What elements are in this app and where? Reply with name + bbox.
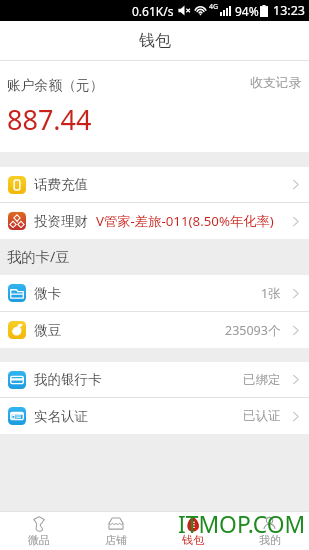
staticText: 投资理财 bbox=[34, 213, 88, 230]
staticText: 已认证 bbox=[243, 408, 281, 424]
staticText: 我的 bbox=[259, 533, 281, 547]
staticText: V管家-差旅-011(8.50%年化率) bbox=[96, 212, 274, 230]
staticText: 13:23 bbox=[273, 2, 305, 19]
staticText: 94% bbox=[235, 3, 259, 19]
staticText: 店铺 bbox=[105, 533, 127, 547]
staticText: 账户余额（元） bbox=[7, 77, 104, 94]
button[interactable]: 微品 bbox=[0, 512, 77, 550]
button[interactable]: 投资理财 bbox=[0, 203, 309, 239]
staticText: 微卡 bbox=[34, 285, 61, 302]
button[interactable]: 收支记录 bbox=[248, 72, 304, 94]
staticText: 微豆 bbox=[34, 322, 61, 339]
staticText: 4G bbox=[209, 2, 219, 12]
staticText: 我的银行卡 bbox=[34, 371, 102, 388]
staticText: 887.44 bbox=[7, 101, 92, 138]
staticText: 我的卡/豆 bbox=[7, 247, 70, 267]
button[interactable]: 话费充值 bbox=[0, 167, 309, 202]
button[interactable]: 我的 bbox=[231, 512, 308, 550]
button[interactable]: 微豆 bbox=[0, 312, 309, 348]
button[interactable]: 店铺 bbox=[77, 512, 154, 550]
button[interactable]: 微卡 bbox=[0, 275, 309, 311]
staticText: 已绑定 bbox=[243, 372, 281, 388]
staticText: 收支记录 bbox=[250, 75, 302, 91]
staticText: 钱包 bbox=[182, 533, 204, 547]
button[interactable]: 实名认证 bbox=[0, 398, 309, 434]
button[interactable]: 我的银行卡 bbox=[0, 362, 309, 397]
staticText: 1张 bbox=[261, 285, 281, 302]
staticText: 0.61K/s bbox=[132, 3, 174, 19]
staticText: 微品 bbox=[28, 533, 50, 547]
staticText: 钱包 bbox=[139, 31, 171, 51]
staticText: 实名认证 bbox=[34, 408, 88, 425]
staticText: 235093个 bbox=[225, 322, 281, 339]
staticText: ITMOP.COM bbox=[178, 509, 306, 540]
staticText: 话费充值 bbox=[34, 176, 88, 193]
button[interactable]: 钱包 bbox=[154, 512, 231, 550]
